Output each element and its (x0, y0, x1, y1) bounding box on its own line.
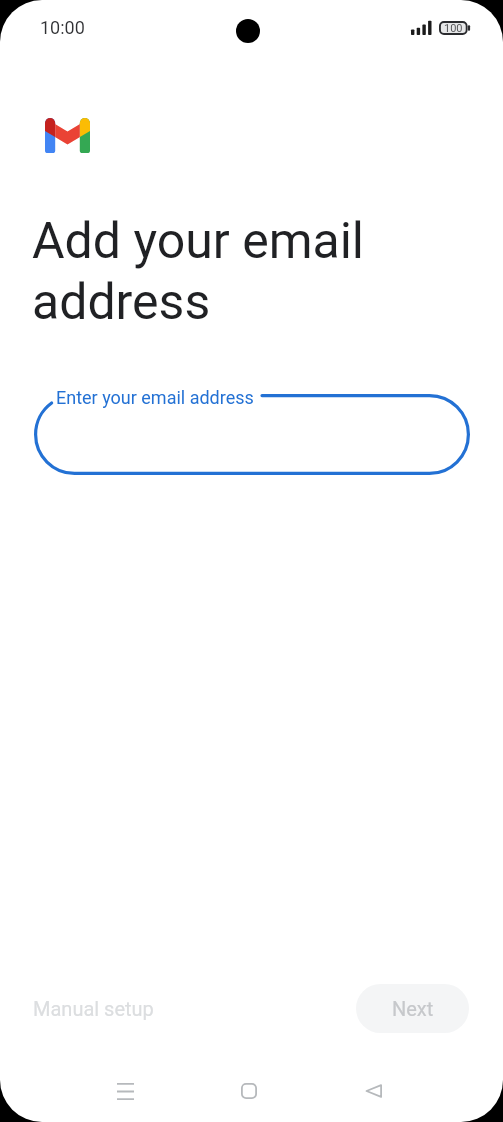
staticText: Next (392, 997, 434, 1020)
button[interactable]: Enter your email address (34, 394, 470, 475)
staticText: Add your email address (32, 212, 365, 331)
staticText: 10:00 (40, 17, 85, 38)
button[interactable]: Next (356, 984, 469, 1033)
button[interactable]: Manual setup (20, 984, 167, 1033)
staticText: Enter your email address (56, 387, 254, 408)
staticText: 100 (444, 22, 463, 35)
button[interactable]: Back (338, 1066, 408, 1116)
staticText: Manual setup (33, 997, 154, 1020)
button[interactable]: Recent apps (90, 1066, 160, 1116)
button[interactable]: Home (214, 1066, 284, 1116)
